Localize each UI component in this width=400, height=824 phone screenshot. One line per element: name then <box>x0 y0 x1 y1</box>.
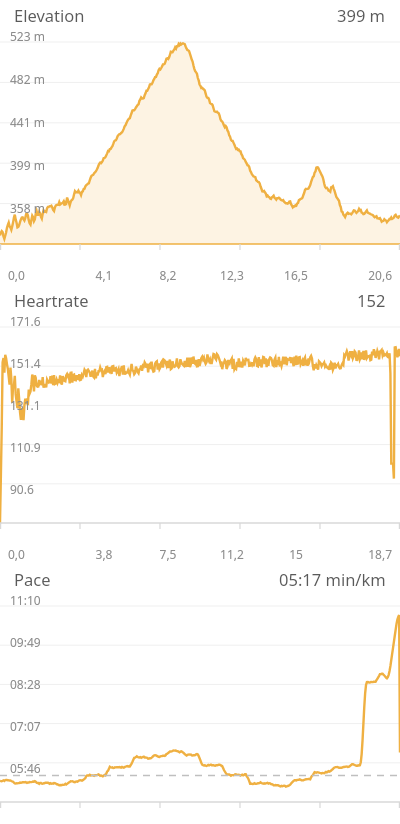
staticText: 358 m <box>10 200 45 216</box>
staticText: 08:28 <box>10 676 41 692</box>
staticText: 11,2 <box>200 546 264 562</box>
button[interactable]: Pace <box>0 564 400 824</box>
staticText: 8,2 <box>136 267 200 283</box>
staticText: Pace <box>14 568 279 590</box>
button[interactable]: Heartrate <box>0 285 400 564</box>
staticText: 0,0 <box>8 267 72 283</box>
staticText: 3,8 <box>72 546 136 562</box>
staticText: 399 m <box>337 4 386 26</box>
staticText: 12,3 <box>200 267 264 283</box>
button[interactable]: Elevation <box>0 0 400 285</box>
staticText: 4,1 <box>72 267 136 283</box>
staticText: 151.4 <box>10 355 41 371</box>
staticText: 482 m <box>10 71 45 87</box>
staticText: 11:10 <box>10 592 41 608</box>
staticText: 15 <box>264 546 328 562</box>
staticText: 7,5 <box>136 546 200 562</box>
staticText: 131.1 <box>10 397 41 413</box>
staticText: 07:07 <box>10 718 41 734</box>
staticText: 441 m <box>10 114 45 130</box>
other: Activity charts <box>0 0 400 824</box>
staticText: 523 m <box>10 28 45 44</box>
staticText: 05:17 min/km <box>279 568 386 590</box>
staticText: Elevation <box>14 4 337 26</box>
staticText: 20,6 <box>328 267 392 283</box>
staticText: 90.6 <box>10 481 34 497</box>
staticText: 18,7 <box>328 546 392 562</box>
staticText: 16,5 <box>264 267 328 283</box>
staticText: 110.9 <box>10 439 41 455</box>
staticText: 171.6 <box>10 313 41 329</box>
staticText: 05:46 <box>10 760 41 776</box>
staticText: 09:49 <box>10 634 41 650</box>
staticText: Heartrate <box>14 289 357 311</box>
staticText: 152 <box>357 289 386 311</box>
staticText: 0,0 <box>8 546 72 562</box>
staticText: 399 m <box>10 157 45 173</box>
